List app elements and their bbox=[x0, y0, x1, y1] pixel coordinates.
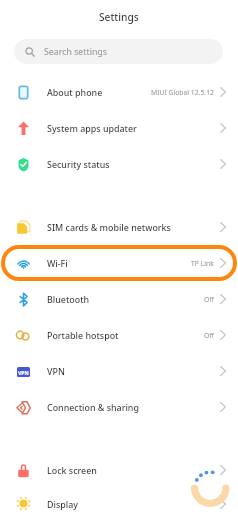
staticText: VPN bbox=[18, 369, 29, 376]
staticText: TP Link bbox=[191, 259, 214, 268]
button[interactable]: Security status bbox=[0, 146, 238, 182]
staticText: Wi-Fi bbox=[47, 257, 68, 269]
button[interactable]: Connection & sharing bbox=[0, 389, 238, 425]
staticText: Lock screen bbox=[47, 464, 97, 476]
button[interactable]: Lock screen bbox=[0, 452, 238, 488]
button[interactable]: System apps updater bbox=[0, 110, 238, 146]
staticText: VPN bbox=[47, 365, 65, 377]
button[interactable]: Bluetooth bbox=[0, 281, 238, 317]
staticText: Search settings bbox=[44, 46, 107, 58]
button[interactable]: Search settings bbox=[14, 39, 223, 64]
staticText: About phone bbox=[47, 86, 103, 98]
staticText: SIM cards & mobile networks bbox=[47, 221, 171, 233]
button[interactable]: Portable hotspot bbox=[0, 317, 238, 353]
staticText: Off bbox=[204, 331, 214, 340]
button[interactable]: VPN bbox=[0, 353, 238, 389]
staticText: System apps updater bbox=[47, 122, 137, 134]
button[interactable]: About phone bbox=[0, 74, 238, 110]
button[interactable]: Display bbox=[0, 488, 238, 519]
staticText: Off bbox=[204, 295, 214, 304]
button[interactable]: SIM cards & mobile networks bbox=[0, 209, 238, 245]
staticText: Bluetooth bbox=[47, 293, 90, 305]
staticText: Portable hotspot bbox=[47, 329, 119, 341]
button[interactable]: Wi-Fi bbox=[0, 245, 238, 281]
staticText: Settings bbox=[99, 10, 139, 24]
staticText: MIUI Global 12.5.12 bbox=[151, 88, 214, 97]
staticText: Connection & sharing bbox=[47, 401, 139, 413]
staticText: Display bbox=[47, 498, 78, 510]
staticText: Security status bbox=[47, 158, 110, 170]
